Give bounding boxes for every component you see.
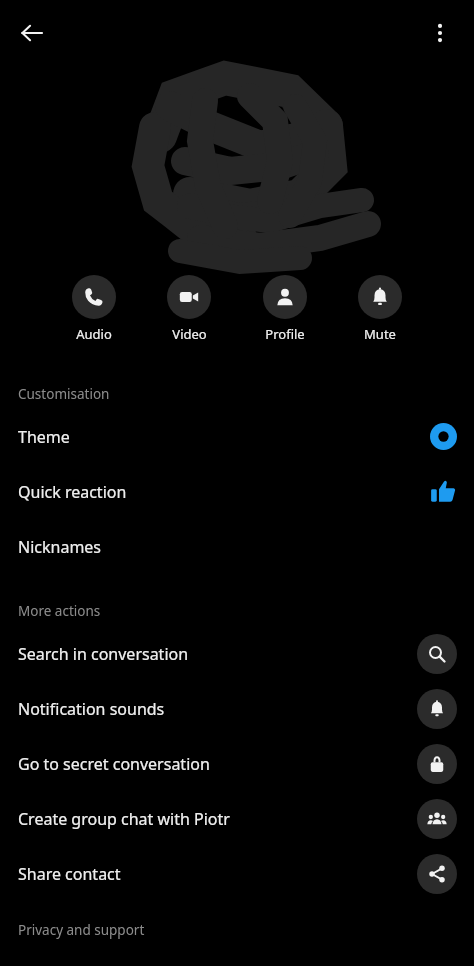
button[interactable]: Profile (255, 275, 315, 343)
button[interactable]: Search in conversation (0, 626, 474, 681)
staticText: Nicknames (18, 536, 102, 558)
button[interactable]: Share contact (0, 846, 474, 901)
button[interactable]: Audio (64, 275, 124, 343)
staticText: Customisation (18, 385, 110, 403)
staticText: More actions (18, 602, 101, 620)
button[interactable]: More options (418, 11, 462, 55)
button[interactable]: Mute (350, 275, 410, 343)
staticText: Search in conversation (18, 643, 189, 665)
staticText: Go to secret conversation (18, 753, 210, 775)
staticText: Privacy and support (18, 921, 145, 939)
staticText: Quick reaction (18, 481, 127, 503)
button[interactable]: Nicknames (0, 519, 474, 574)
button[interactable]: Back (10, 11, 54, 55)
staticText: Create group chat with Piotr (18, 808, 230, 830)
staticText: Mute (364, 325, 396, 343)
staticText: Profile (265, 325, 305, 343)
button[interactable]: Video (159, 275, 219, 343)
staticText: Theme (18, 426, 70, 448)
button[interactable]: Quick reaction (0, 464, 474, 519)
staticText: Audio (76, 325, 112, 343)
button[interactable]: Go to secret conversation (0, 736, 474, 791)
button[interactable]: Create group chat with Piotr (0, 791, 474, 846)
staticText: Notification sounds (18, 698, 165, 720)
button[interactable]: Notification sounds (0, 681, 474, 736)
staticText: Video (172, 325, 207, 343)
button[interactable]: Theme (0, 409, 474, 464)
staticText: Share contact (18, 863, 121, 885)
